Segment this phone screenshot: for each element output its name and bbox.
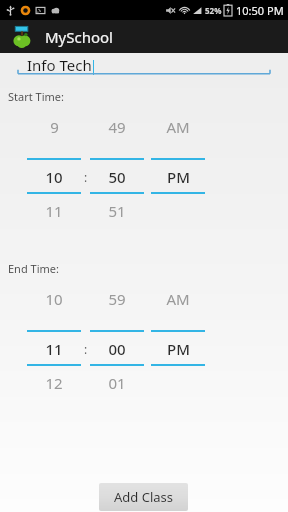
staticText: 12 bbox=[45, 373, 63, 393]
staticText: 49 bbox=[108, 117, 126, 137]
staticText: 10 bbox=[45, 289, 63, 309]
button[interactable]: Info Tech bbox=[0, 53, 288, 75]
other: App icon bbox=[11, 25, 35, 49]
button[interactable]: Add Class bbox=[99, 483, 188, 511]
button[interactable]: AM bbox=[151, 117, 205, 137]
staticText: 10 bbox=[45, 167, 63, 187]
button[interactable]: 11 bbox=[27, 339, 81, 359]
staticText: 9 bbox=[50, 117, 59, 137]
staticText: Info Tech bbox=[27, 55, 92, 75]
staticText: Add Class bbox=[114, 488, 173, 506]
button[interactable]: AM bbox=[151, 289, 205, 309]
staticText: AM bbox=[166, 289, 190, 309]
staticText: 11 bbox=[45, 339, 63, 359]
staticText: 00 bbox=[108, 339, 126, 359]
staticText: 52% bbox=[205, 5, 222, 16]
staticText: AM bbox=[166, 117, 190, 137]
button[interactable]: 10 bbox=[27, 167, 81, 187]
staticText: 59 bbox=[108, 289, 126, 309]
button[interactable]: 49 bbox=[90, 117, 144, 137]
staticText: Start Time: bbox=[8, 89, 64, 104]
button[interactable]: 01 bbox=[90, 373, 144, 393]
button[interactable]: 11 bbox=[27, 201, 81, 221]
button[interactable]: PM bbox=[151, 167, 205, 187]
button[interactable]: 00 bbox=[90, 339, 144, 359]
button[interactable]: 12 bbox=[27, 373, 81, 393]
staticText: 10:50 PM bbox=[236, 3, 284, 18]
staticText: MySchool bbox=[45, 27, 113, 47]
button[interactable]: 59 bbox=[90, 289, 144, 309]
button[interactable]: 50 bbox=[90, 167, 144, 187]
staticText: PM bbox=[167, 339, 190, 359]
staticText: PM bbox=[167, 167, 190, 187]
staticText: End Time: bbox=[8, 261, 59, 276]
staticText: : bbox=[84, 169, 88, 185]
staticText: : bbox=[84, 341, 88, 357]
staticText: 01 bbox=[108, 373, 126, 393]
button[interactable]: 51 bbox=[90, 201, 144, 221]
staticText: 50 bbox=[108, 167, 126, 187]
button[interactable]: 10 bbox=[27, 289, 81, 309]
button[interactable]: PM bbox=[151, 339, 205, 359]
button[interactable]: 9 bbox=[27, 117, 81, 137]
staticText: 11 bbox=[45, 201, 63, 221]
staticText: 51 bbox=[108, 201, 126, 221]
